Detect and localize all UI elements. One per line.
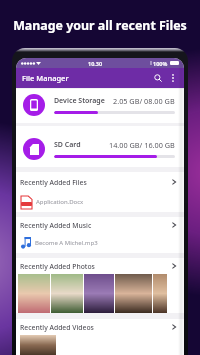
staticText: Recently Added Music xyxy=(20,221,92,230)
staticText: File Manager xyxy=(22,73,69,83)
button[interactable]: Recently Added Files xyxy=(16,172,184,192)
staticText: Manage your all recent Files xyxy=(0,17,200,34)
button[interactable]: Recently Added Videos xyxy=(16,319,184,335)
staticText: 14.00 GB/ 16.00 GB xyxy=(109,140,175,150)
button[interactable]: Recently Added Music xyxy=(16,217,184,233)
staticText: 10.30 xyxy=(88,60,103,67)
button[interactable]: Photo 1 xyxy=(18,274,50,313)
staticText: SD Card xyxy=(54,140,81,150)
staticText: Become A Michel.mp3 xyxy=(35,239,98,247)
staticText: Recently Added Photos xyxy=(20,262,95,271)
button[interactable]: Device Storage xyxy=(16,89,184,123)
staticText: Recently Added Videos xyxy=(20,323,94,332)
button[interactable]: Photo 2 xyxy=(51,274,83,313)
staticText: Application.Docx xyxy=(36,198,84,206)
button[interactable]: Photo 4 xyxy=(115,274,152,313)
button[interactable]: Application.Docx xyxy=(16,192,184,212)
button[interactable]: More options xyxy=(166,71,180,85)
button[interactable]: Recently Added Photos xyxy=(16,258,184,274)
button[interactable]: Become A Michel.mp3 xyxy=(16,233,184,253)
button[interactable]: Video 1 xyxy=(20,335,56,355)
button[interactable]: SD Card xyxy=(16,126,184,167)
button[interactable]: Search xyxy=(150,70,166,86)
button[interactable]: Photo 3 xyxy=(84,274,114,313)
staticText: Recently Added Files xyxy=(20,178,87,187)
staticText: Device Storage xyxy=(54,96,105,106)
button[interactable]: Photo 5 xyxy=(153,274,167,313)
staticText: 100% xyxy=(153,60,168,67)
staticText: 2.05 GB/ 08.00 GB xyxy=(113,96,175,106)
